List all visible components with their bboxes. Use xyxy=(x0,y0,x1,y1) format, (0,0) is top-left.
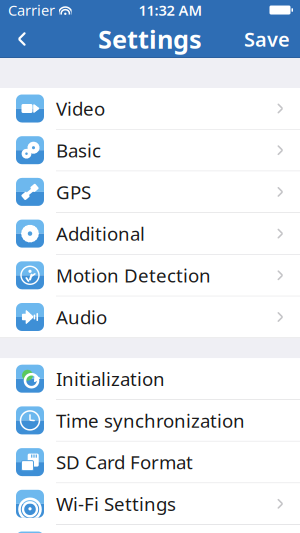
staticText: Basic xyxy=(56,138,101,163)
staticText: Motion Detection xyxy=(56,263,211,288)
staticText: Settings xyxy=(98,22,202,56)
staticText: Initialization xyxy=(56,366,165,391)
staticText: Audio xyxy=(56,305,107,329)
button[interactable]: Basic xyxy=(0,130,300,171)
button[interactable]: Video xyxy=(0,88,300,130)
staticText: 11:32 AM xyxy=(138,0,202,20)
staticText: Save xyxy=(244,26,290,52)
staticText: Video xyxy=(56,96,105,121)
staticText: GPS xyxy=(56,179,91,204)
staticText: SD Card Format xyxy=(56,450,193,474)
staticText: Carrier xyxy=(8,0,55,20)
button[interactable]: SD Card Format xyxy=(0,442,300,483)
staticText: Wi-Fi Settings xyxy=(56,491,176,516)
button[interactable]: GPS xyxy=(0,171,300,213)
button[interactable]: Back xyxy=(0,20,44,58)
button[interactable]: Motion Detection xyxy=(0,255,300,296)
button[interactable]: Initialization xyxy=(0,358,300,400)
button[interactable]: Time synchronization xyxy=(0,400,300,442)
button[interactable]: Device Settings xyxy=(0,525,300,533)
button[interactable]: Additional xyxy=(0,213,300,255)
button[interactable]: Save xyxy=(234,20,300,58)
button[interactable]: Audio xyxy=(0,296,300,338)
staticText: Additional xyxy=(56,221,145,246)
button[interactable]: Wi-Fi Settings xyxy=(0,483,300,525)
staticText: Time synchronization xyxy=(56,408,245,433)
